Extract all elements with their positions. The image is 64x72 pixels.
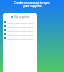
staticText: My supplies <box>14 15 30 19</box>
button[interactable]: Supply item name here <box>3 28 37 32</box>
button[interactable]: Supply item name here <box>3 32 37 36</box>
staticText: Supply item name here <box>7 29 34 32</box>
staticText: Supply item name here <box>7 37 34 40</box>
staticText: Supply item name here <box>7 33 34 36</box>
staticText: your supplies <box>23 4 42 8</box>
staticText: Supply item name here <box>7 21 34 24</box>
staticText: Create an account to sync <box>14 1 50 5</box>
button[interactable]: Supply item name here <box>3 36 37 40</box>
staticText: Supply item name here <box>7 25 34 28</box>
button[interactable]: Supply item name here <box>3 20 37 24</box>
button[interactable]: Supply item name here <box>3 24 37 28</box>
button[interactable]: My supplies <box>3 13 37 21</box>
